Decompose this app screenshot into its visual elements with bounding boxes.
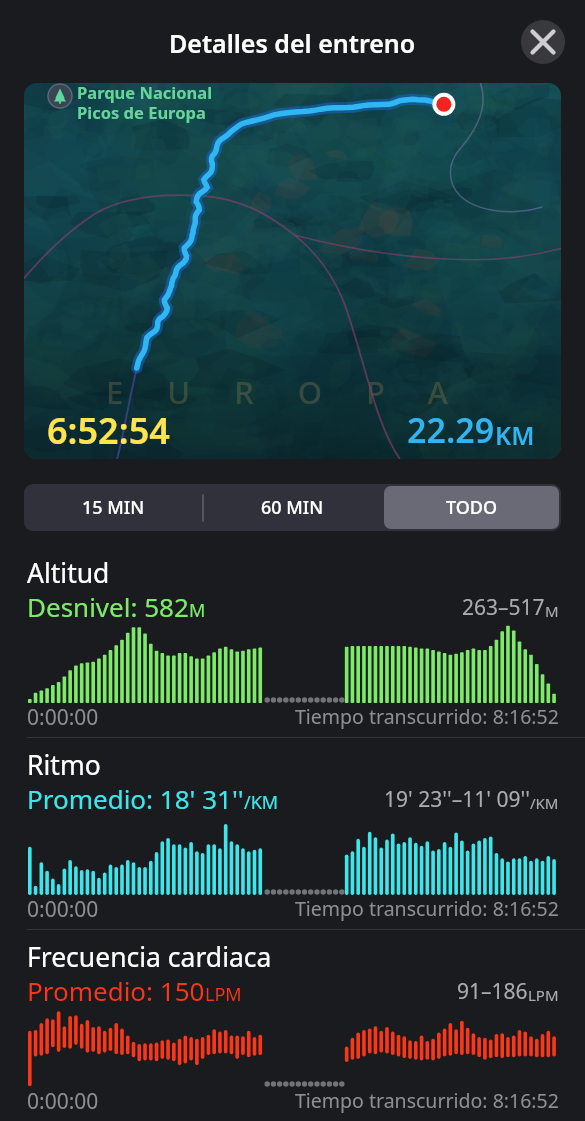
button[interactable]: 60 MIN [205, 486, 380, 529]
button[interactable]: TODO [384, 486, 559, 529]
button[interactable]: 15 MIN [26, 486, 201, 529]
staticText: KM [495, 418, 535, 452]
staticText: M [545, 601, 559, 621]
staticText: M [189, 598, 206, 623]
staticText: 22.29 [407, 407, 495, 453]
staticText: 91–186 [457, 977, 528, 1006]
staticText: 60 MIN [261, 495, 324, 520]
staticText: Detalles del entreno [169, 26, 416, 60]
button[interactable]: Cerrar [521, 20, 565, 64]
staticText: LPM [205, 982, 242, 1007]
staticText: Tiempo transcurrido: 8:16:52 [295, 895, 559, 922]
staticText: 0:00:00 [27, 703, 99, 732]
staticText: Parque Nacional [77, 83, 213, 103]
staticText: TODO [446, 495, 498, 520]
staticText: 263–517 [462, 593, 545, 622]
staticText: Ritmo [27, 747, 101, 783]
staticText: 0:00:00 [27, 1087, 99, 1116]
staticText: Frecuencia cardiaca [27, 939, 272, 975]
staticText: Tiempo transcurrido: 8:16:52 [295, 703, 559, 730]
staticText: 6:52:54 [47, 406, 170, 455]
staticText: 0:00:00 [27, 895, 99, 924]
staticText: 19' 23''–11' 09'' [384, 785, 530, 814]
staticText: Altitud [27, 555, 110, 591]
staticText: Tiempo transcurrido: 8:16:52 [295, 1087, 559, 1114]
staticText: Desnivel: 582 [27, 589, 189, 624]
staticText: Picos de Europa [77, 101, 206, 123]
staticText: /KM [244, 790, 279, 815]
staticText: /KM [530, 793, 559, 813]
staticText: Promedio: 18' 31'' [27, 781, 244, 816]
staticText: LPM [528, 985, 559, 1005]
staticText: EUROPA [106, 371, 492, 413]
staticText: 15 MIN [82, 495, 145, 520]
staticText: Promedio: 150 [27, 973, 205, 1008]
